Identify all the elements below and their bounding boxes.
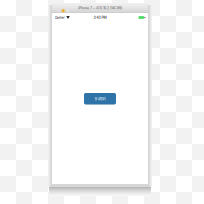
button[interactable]: Minimize window (62, 9, 65, 12)
staticText: 3:43 PM (93, 15, 106, 20)
staticText: Button (94, 96, 105, 101)
staticText: iPhone 7 – iOS 10.2 (14C89) (78, 6, 122, 10)
staticText: Carrier (55, 15, 65, 19)
button[interactable]: Button (84, 93, 116, 104)
